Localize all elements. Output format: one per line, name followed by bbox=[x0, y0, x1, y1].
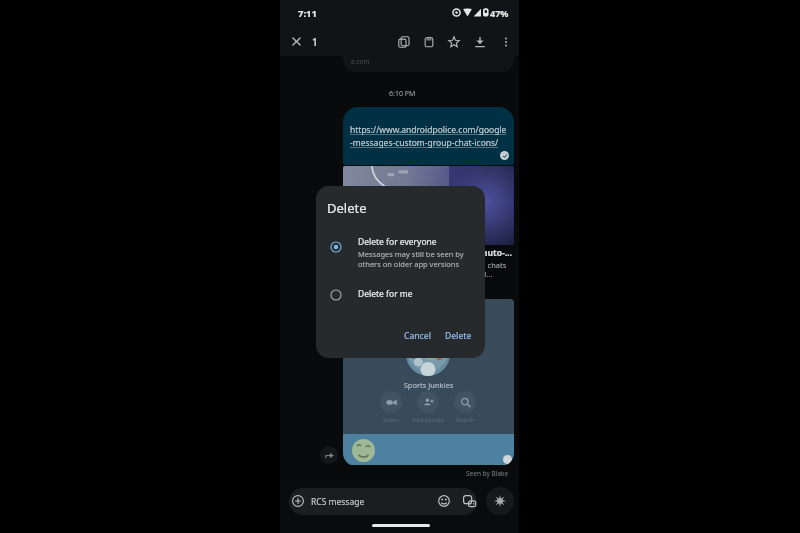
button[interactable]: Emoji bbox=[433, 490, 455, 512]
button[interactable]: Add star bbox=[443, 31, 464, 52]
button[interactable]: Forward bbox=[320, 446, 338, 464]
button[interactable]: Gallery bbox=[458, 490, 480, 512]
staticText: 1 bbox=[312, 35, 318, 49]
button[interactable]: Video bbox=[374, 391, 408, 424]
staticText: Delete bbox=[445, 330, 472, 342]
staticText: 47% bbox=[490, 7, 509, 19]
staticText: Delete for me bbox=[358, 288, 413, 300]
button[interactable]: Delete bbox=[439, 326, 478, 346]
staticText: e.com bbox=[351, 57, 370, 66]
button[interactable]: More options bbox=[495, 31, 516, 52]
button[interactable]: Google Messages now lets you auto-… bbox=[343, 245, 514, 297]
button[interactable]: Copy bbox=[393, 31, 414, 52]
staticText: 6:10 PM bbox=[389, 89, 416, 99]
staticText: Sports Junkies bbox=[343, 380, 514, 390]
staticText: https://www.androidpolice.com/google bbox=[350, 124, 507, 136]
staticText: Search bbox=[448, 416, 482, 424]
button[interactable]: Delete bbox=[418, 31, 439, 52]
staticText: Here's how to set up your own custom cha… bbox=[351, 260, 507, 270]
button[interactable]: Sports Junkies bbox=[343, 299, 514, 466]
staticText: Add people bbox=[411, 416, 445, 424]
staticText: 7:11 bbox=[298, 7, 317, 20]
button[interactable]: e.com bbox=[343, 36, 514, 72]
button[interactable] bbox=[343, 166, 514, 245]
button[interactable]: Search bbox=[448, 391, 482, 424]
staticText: icons for all of your own personalized l… bbox=[351, 269, 493, 279]
staticText: -messages-custom-group-chat-icons/ bbox=[350, 137, 499, 149]
button[interactable]: Close selection bbox=[286, 31, 307, 52]
staticText: RCS message bbox=[311, 496, 365, 508]
staticText: Delete for everyone bbox=[358, 236, 437, 248]
button[interactable]: Add people bbox=[411, 391, 445, 424]
button[interactable]: Download bbox=[469, 31, 490, 52]
button[interactable]: Send bbox=[486, 487, 514, 515]
button[interactable]: https://www.androidpolice.com/google bbox=[343, 107, 514, 165]
button[interactable]: Delete for me bbox=[316, 284, 485, 308]
staticText: androidpolice.com bbox=[351, 282, 408, 291]
staticText: Video bbox=[374, 416, 408, 424]
staticText: Delete bbox=[327, 199, 367, 217]
button[interactable]: Cancel bbox=[398, 326, 437, 346]
staticText: Google Messages now lets you auto-… bbox=[351, 247, 513, 259]
staticText: Messages may still be seen by bbox=[358, 249, 464, 259]
staticText: Cancel bbox=[404, 330, 431, 342]
staticText: Seen by Blake bbox=[466, 469, 509, 478]
button[interactable]: Delete for everyone bbox=[316, 236, 485, 278]
staticText: others on older app versions bbox=[358, 259, 460, 269]
button[interactable]: RCS message bbox=[289, 488, 477, 515]
